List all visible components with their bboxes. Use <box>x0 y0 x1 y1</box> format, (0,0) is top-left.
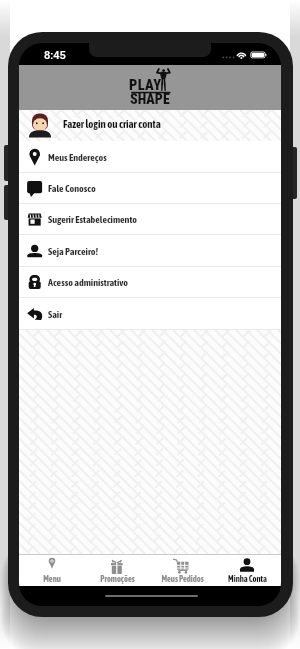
button[interactable]: Sair <box>19 298 281 330</box>
staticText: Sair <box>48 309 63 320</box>
button[interactable]: Acesso administrativo <box>19 267 281 298</box>
button[interactable]: Fale Conosco <box>19 173 281 204</box>
staticText: Fale Conosco <box>48 183 96 194</box>
button[interactable]: Minha Conta <box>217 555 281 587</box>
staticText: Fazer login ou criar conta <box>63 118 161 130</box>
staticText: Sugerir Estabelecimento <box>48 214 137 225</box>
staticText: Minha Conta <box>228 574 267 584</box>
staticText: SHAPE <box>130 91 170 107</box>
button[interactable]: Seja Parceiro! <box>19 235 281 267</box>
button[interactable]: Promoções <box>85 555 151 587</box>
button[interactable]: Meus Endereços <box>19 141 281 173</box>
button[interactable]: Sugerir Estabelecimento <box>19 204 281 235</box>
button[interactable]: Meus Pedidos <box>151 555 217 587</box>
staticText: Seja Parceiro! <box>48 246 99 257</box>
staticText: 8:45 <box>44 49 66 62</box>
button[interactable]: Fazer login ou criar conta <box>19 110 281 141</box>
staticText: PLAY <box>129 77 162 94</box>
button[interactable]: Menu <box>19 555 85 587</box>
staticText: Meus Pedidos <box>161 574 204 584</box>
staticText: Menu <box>43 574 61 584</box>
staticText: Meus Endereços <box>48 152 107 163</box>
staticText: Promoções <box>100 574 135 584</box>
staticText: Acesso administrativo <box>48 277 129 288</box>
